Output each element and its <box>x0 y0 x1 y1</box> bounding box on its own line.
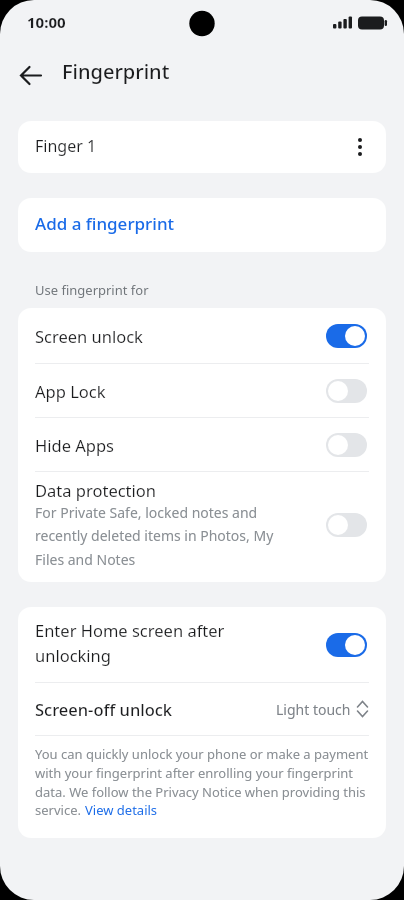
button[interactable] <box>326 633 367 657</box>
button[interactable]: Enter Home screen after unlocking <box>18 607 386 682</box>
staticText: Enter Home screen after unlocking <box>35 619 326 667</box>
staticText: Light touch <box>276 700 351 719</box>
staticText: service. <box>35 801 85 819</box>
button[interactable]: Screen unlock <box>18 308 386 363</box>
staticText: Screen unlock <box>35 325 326 347</box>
staticText: For Private Safe, locked notes and recen… <box>35 503 274 570</box>
staticText: Data protection <box>35 479 156 501</box>
button[interactable] <box>326 324 367 348</box>
button[interactable] <box>326 433 367 457</box>
button[interactable]: App Lock <box>18 364 386 417</box>
button[interactable]: View details <box>85 801 158 819</box>
button[interactable] <box>14 61 48 91</box>
staticText: 10:00 <box>27 12 66 32</box>
staticText: Add a fingerprint <box>35 212 175 235</box>
staticText: Screen-off unlock <box>35 698 276 720</box>
staticText: Fingerprint <box>62 58 170 85</box>
button[interactable] <box>326 379 367 403</box>
button[interactable]: Add a fingerprint <box>18 198 386 252</box>
staticText: Finger 1 <box>35 135 97 157</box>
staticText: Use fingerprint for <box>35 281 149 299</box>
staticText: App Lock <box>35 380 326 402</box>
button[interactable]: Finger 1 <box>18 121 386 173</box>
staticText: Hide Apps <box>35 434 326 456</box>
staticText: You can quickly unlock your phone or mak… <box>35 745 369 801</box>
button[interactable]: Data protection <box>18 472 386 582</box>
button[interactable] <box>326 513 367 537</box>
button[interactable]: Hide Apps <box>18 418 386 471</box>
button[interactable]: Screen-off unlock <box>18 683 386 735</box>
